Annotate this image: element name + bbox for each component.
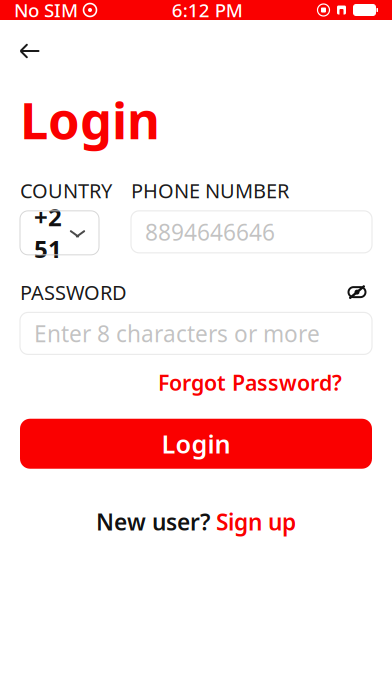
staticText: Login [161,427,230,460]
staticText: PASSWORD [20,279,127,305]
staticText: +251 [34,201,62,265]
staticText: Enter 8 characters or more [34,318,320,348]
button[interactable]: 8894646646 [131,211,372,253]
staticText: Forgot Password? [158,368,342,397]
button[interactable]: Login [20,419,372,469]
staticText: COUNTRY [20,177,112,204]
staticText: New user? [96,507,216,537]
staticText: No SIM [14,0,78,22]
button[interactable]: Enter 8 characters or more [20,312,372,354]
button[interactable]: +251 [20,211,99,255]
staticText: 8894646646 [145,217,275,247]
staticText: Login [20,86,160,153]
button[interactable]: Forgot Password? [158,368,342,397]
button[interactable]: Back [8,34,52,68]
staticText: PHONE NUMBER [131,177,289,204]
staticText: Sign up [216,507,296,537]
button[interactable]: Show password [342,280,372,304]
button[interactable]: Sign up [216,507,296,537]
staticText: 6:12 PM [172,0,243,22]
